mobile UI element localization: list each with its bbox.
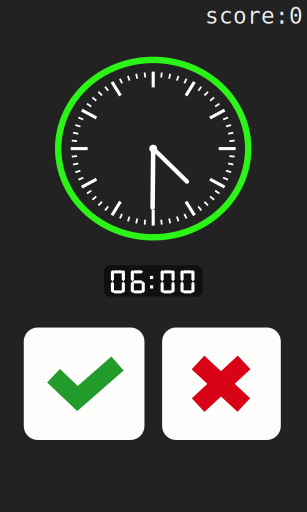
staticText: score:0	[205, 3, 303, 29]
button[interactable]: Yes, the times match	[24, 327, 144, 440]
button[interactable]: No, the times do not match	[162, 327, 281, 440]
